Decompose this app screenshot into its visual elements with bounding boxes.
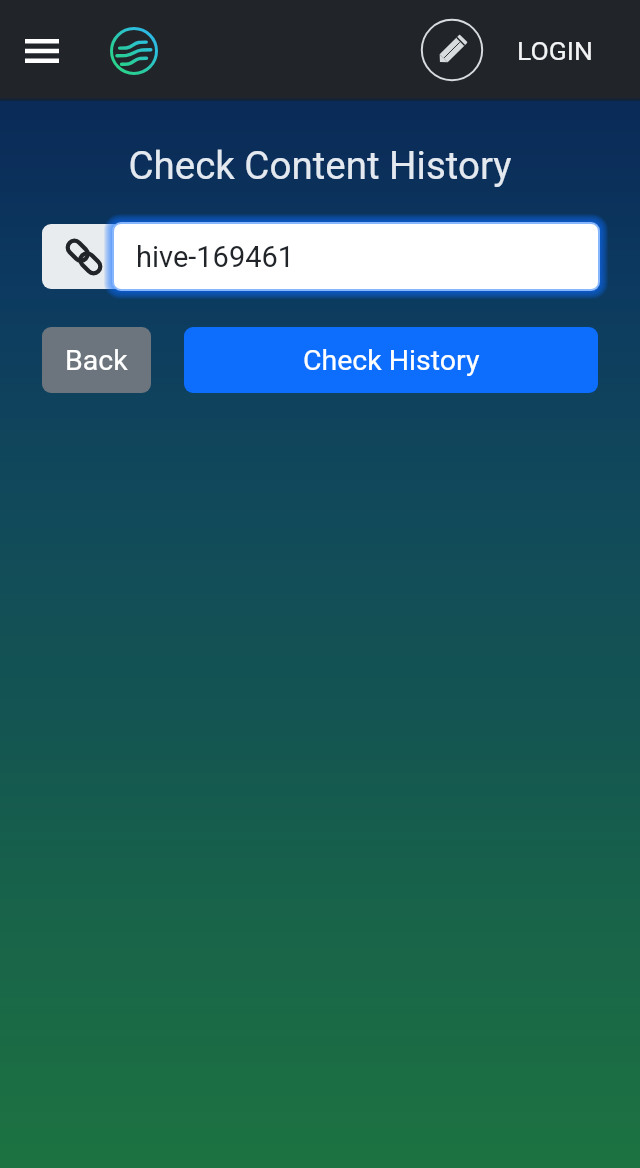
- button[interactable]: Open navigation menu: [17, 26, 67, 76]
- button[interactable]: hive-169461: [104, 214, 608, 299]
- button[interactable]: Back: [42, 327, 151, 393]
- button[interactable]: LOGIN: [511, 25, 599, 76]
- button[interactable]: Check History: [184, 327, 598, 393]
- staticText: LOGIN: [517, 35, 593, 66]
- staticText: Check Content History: [0, 143, 640, 188]
- staticText: Check History: [303, 344, 480, 377]
- staticText: hive-169461: [136, 240, 295, 274]
- button[interactable]: Create a post: [415, 14, 489, 88]
- staticText: Back: [65, 344, 128, 377]
- button[interactable]: Hive home: [106, 23, 162, 79]
